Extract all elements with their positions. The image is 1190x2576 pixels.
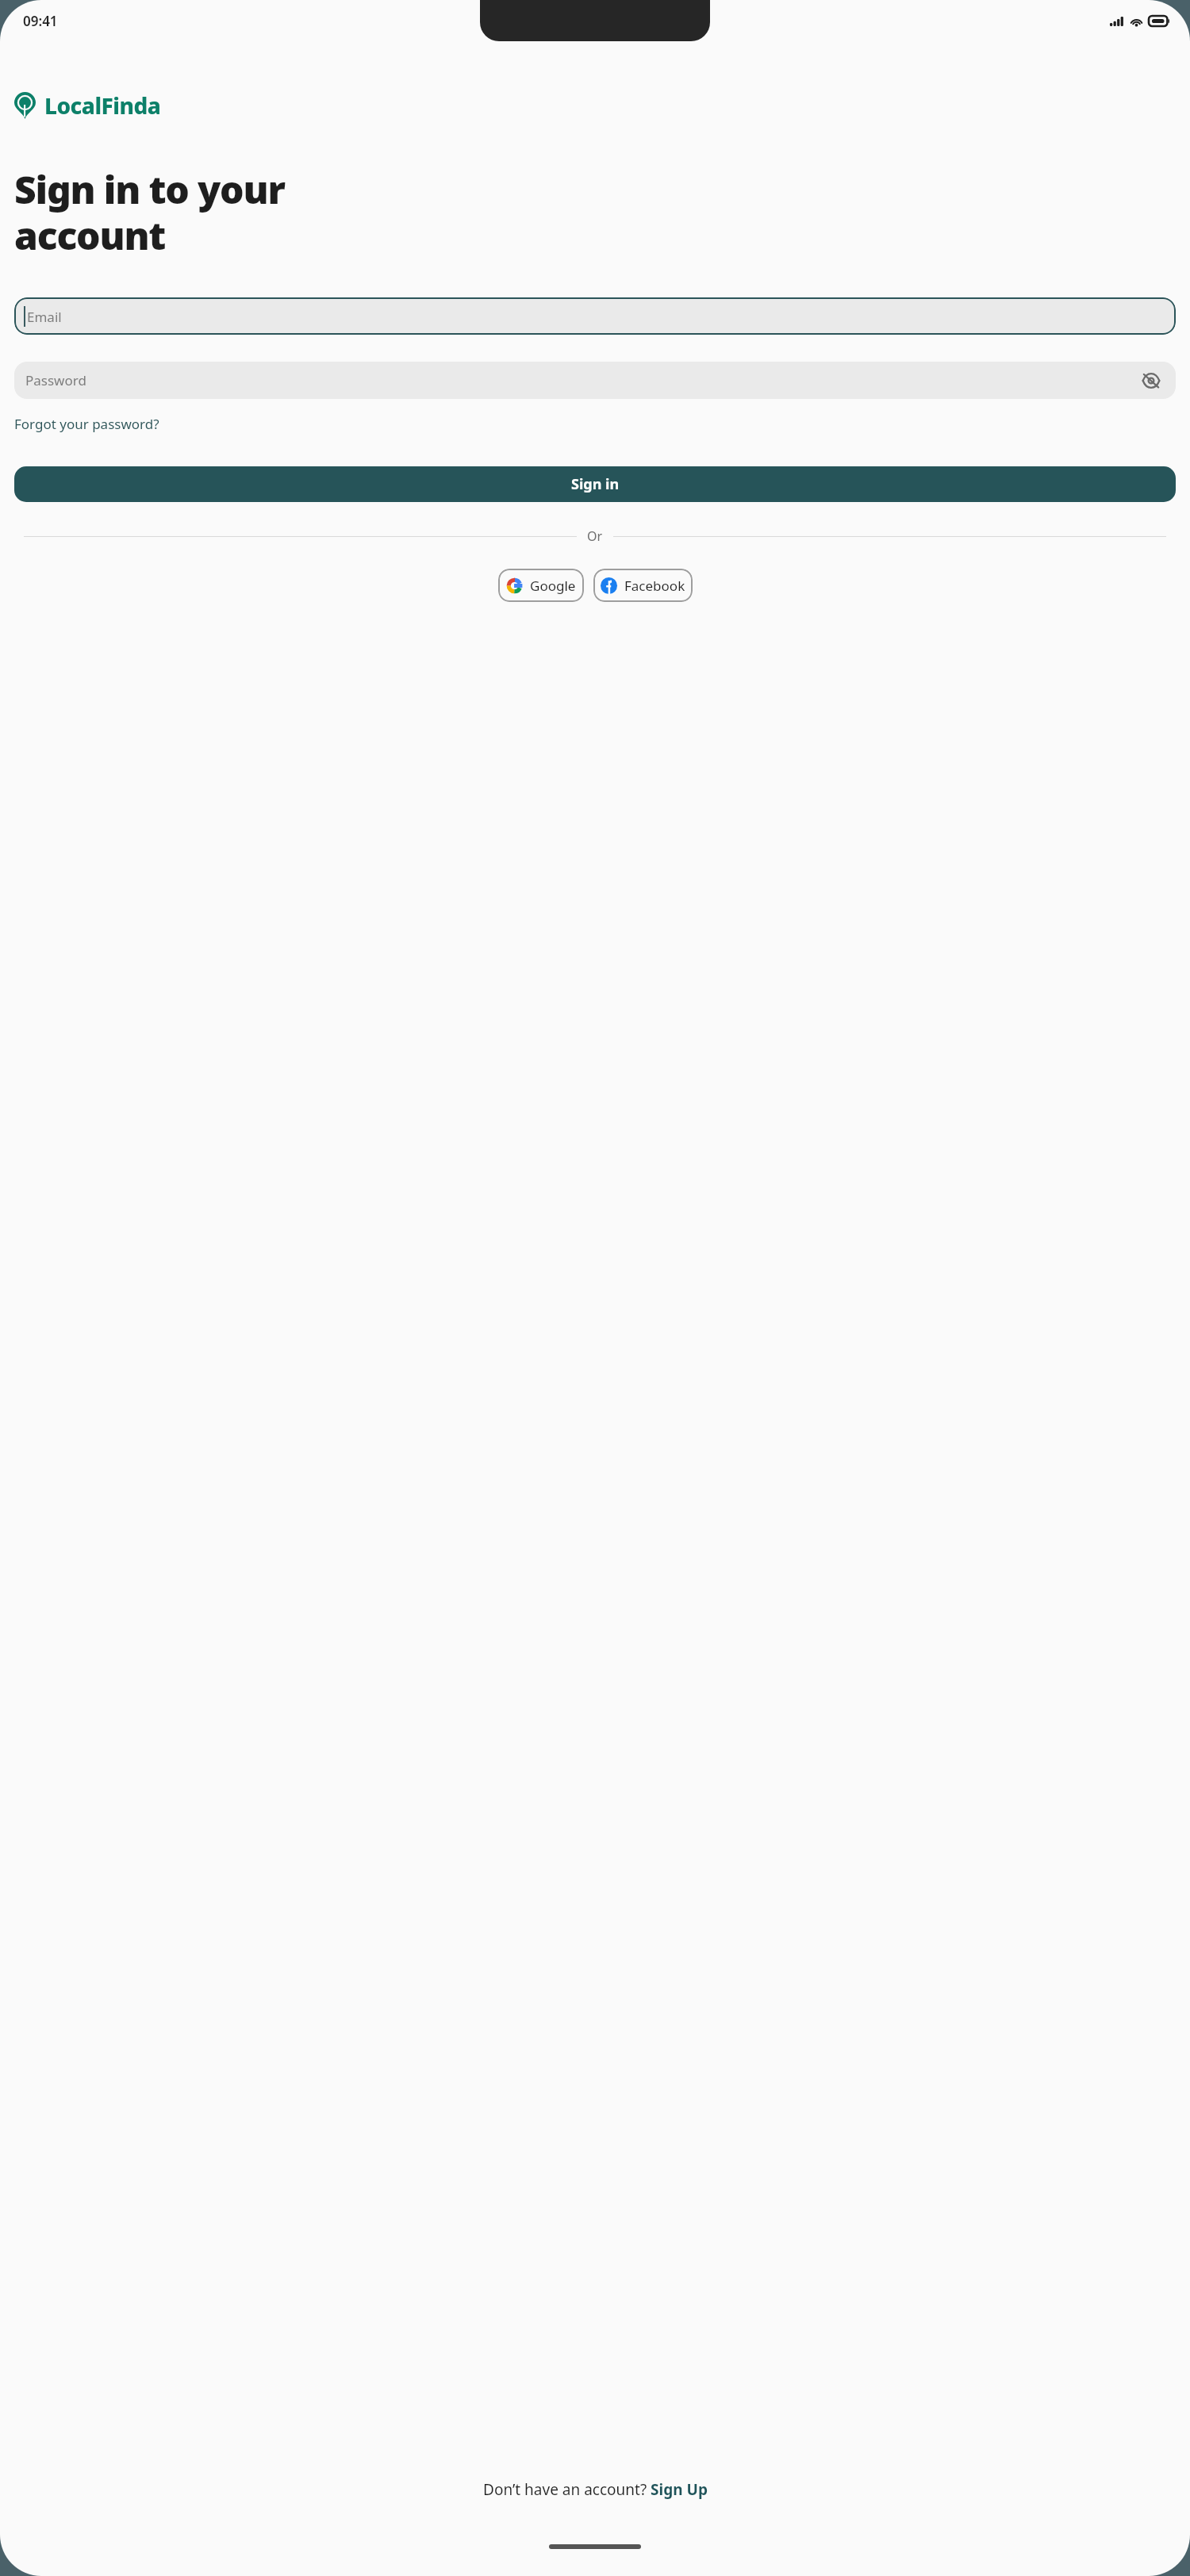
button[interactable]: Facebook [593,569,693,602]
staticText: Facebook [624,577,685,595]
staticText: Sign in [571,474,620,494]
button[interactable]: Forgot your password? [14,415,159,433]
staticText: 09:41 [23,12,58,30]
staticText: Or [587,527,603,545]
staticText: Password [25,371,86,389]
staticText: Email [27,308,62,326]
staticText: Google [530,577,576,595]
button[interactable]: Email [14,297,1176,335]
button[interactable]: Show password [1139,369,1163,393]
staticText: LocalFinda [44,90,161,121]
staticText: Forgot your password? [14,415,159,433]
button[interactable]: Sign in [14,466,1176,502]
staticText: Don’t have an account? Sign Up [483,2479,708,2500]
button[interactable]: Don’t have an account? Sign Up [0,2479,1190,2500]
staticText: Sign in to your account [14,163,285,261]
button[interactable]: Password [14,362,1176,399]
button[interactable]: Google [498,569,584,602]
